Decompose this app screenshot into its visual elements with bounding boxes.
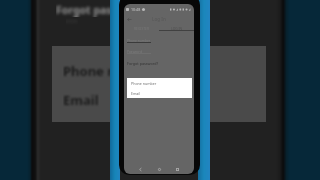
button[interactable]: Back (125, 15, 133, 23)
staticText: LOG IN (171, 26, 183, 30)
staticText: Forgot password? (127, 61, 159, 66)
button[interactable]: Forgot password? (127, 61, 159, 66)
button[interactable]: Phone number (127, 38, 151, 43)
button[interactable]: Recents (174, 166, 181, 173)
button[interactable]: Email (127, 88, 192, 98)
button[interactable]: Home (156, 166, 163, 173)
staticText: Email (131, 91, 141, 96)
staticText: Phone number (131, 81, 157, 86)
staticText: Forgot passw (56, 3, 126, 17)
staticText: 10:48 (131, 7, 141, 11)
button[interactable]: Password (127, 49, 151, 54)
button[interactable]: LOG IN (167, 25, 187, 31)
staticText: Password (127, 49, 142, 53)
button[interactable]: Back (137, 166, 144, 173)
staticText: Phone number (127, 38, 151, 42)
staticText: Phone number (63, 62, 159, 80)
staticText: Email (63, 91, 99, 109)
staticText: Log In (152, 16, 166, 22)
button[interactable]: Phone number (127, 78, 192, 88)
staticText: REGISTER (134, 26, 149, 30)
